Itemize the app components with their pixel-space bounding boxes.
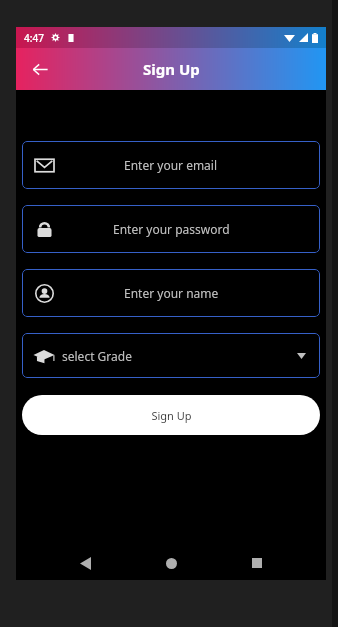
button[interactable]: Enter your name xyxy=(22,269,320,317)
button[interactable]: Sign Up xyxy=(22,395,320,435)
staticText: Enter your email xyxy=(124,157,218,173)
button[interactable]: Recents xyxy=(240,546,274,580)
button[interactable]: Home xyxy=(154,546,188,580)
staticText: Enter your password xyxy=(113,221,230,237)
staticText: Sign Up xyxy=(151,408,192,423)
button[interactable]: Enter your email xyxy=(22,141,320,189)
staticText: Enter your name xyxy=(124,285,219,301)
button[interactable]: select Grade xyxy=(22,333,320,378)
button[interactable]: Back xyxy=(22,51,58,87)
button[interactable]: Enter your password xyxy=(22,205,320,253)
staticText: select Grade xyxy=(62,348,132,364)
button[interactable]: Back xyxy=(68,546,102,580)
staticText: Sign Up xyxy=(143,59,200,79)
staticText: 4:47 xyxy=(24,31,44,45)
